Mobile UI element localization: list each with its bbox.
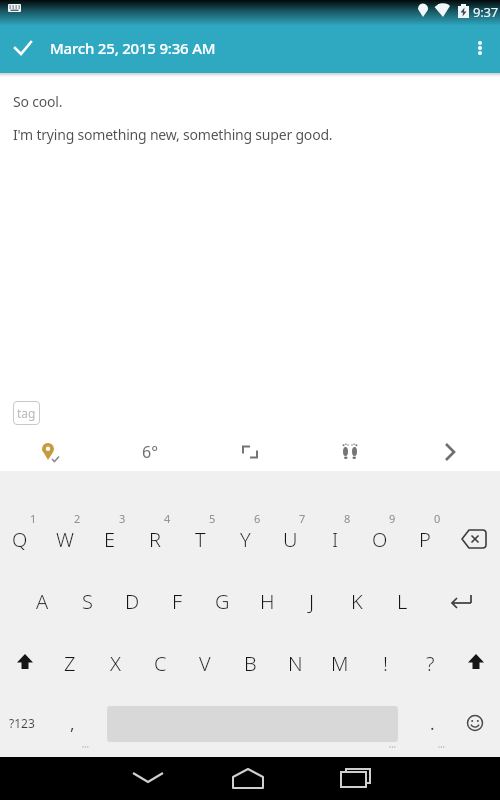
staticText: 8	[344, 511, 351, 526]
staticText: 6	[254, 511, 261, 526]
button[interactable]: Q	[0, 524, 42, 554]
staticText: tag	[17, 405, 36, 421]
button[interactable]	[4, 645, 46, 681]
staticText: .	[430, 712, 435, 735]
button[interactable]: G	[200, 586, 244, 616]
staticText: A	[36, 588, 49, 615]
button[interactable]: L	[380, 586, 424, 616]
staticText: W	[56, 526, 74, 553]
staticText: B	[244, 650, 257, 677]
button[interactable]: !	[363, 648, 407, 678]
button[interactable]: ?	[408, 648, 452, 678]
staticText: R	[149, 526, 161, 553]
staticText: I'm trying something new, something supe…	[13, 125, 333, 144]
button[interactable]	[230, 434, 270, 470]
button[interactable]	[430, 434, 470, 470]
staticText: 9:37	[473, 3, 498, 21]
staticText: March 25, 2015 9:36 AM	[50, 38, 216, 58]
button[interactable]: O	[358, 524, 402, 554]
button[interactable]: K	[335, 586, 379, 616]
staticText: V	[199, 650, 211, 677]
staticText: F	[172, 588, 183, 615]
staticText: E	[104, 526, 116, 553]
staticText: 9	[389, 511, 396, 526]
staticText: M	[331, 650, 349, 677]
staticText: K	[351, 588, 363, 615]
button[interactable]: N	[273, 648, 317, 678]
button[interactable]: C	[138, 648, 182, 678]
button[interactable]: X	[93, 648, 137, 678]
staticText: So cool.	[13, 92, 63, 111]
staticText: 2	[74, 511, 81, 526]
button[interactable]: 6°	[130, 434, 170, 470]
staticText: D	[125, 588, 140, 615]
button[interactable]: Z	[48, 648, 92, 678]
staticText: O	[372, 526, 388, 553]
button[interactable]	[466, 33, 494, 63]
button[interactable]: B	[228, 648, 272, 678]
button[interactable]	[440, 583, 484, 619]
button[interactable]: I	[313, 524, 357, 554]
staticText: H	[260, 588, 275, 615]
staticText: I	[332, 526, 339, 553]
staticText: 1	[30, 511, 37, 526]
button[interactable]	[452, 521, 496, 557]
staticText: !	[383, 650, 388, 677]
button[interactable]	[128, 759, 168, 799]
button[interactable]	[336, 759, 376, 799]
staticText: P	[419, 526, 431, 553]
button[interactable]	[30, 434, 70, 470]
button[interactable]: ?123	[0, 708, 44, 738]
button[interactable]: P	[403, 524, 447, 554]
staticText: 6°	[142, 441, 159, 463]
button[interactable]: J	[290, 586, 334, 616]
button[interactable]: S	[65, 586, 109, 616]
button[interactable]: W	[43, 524, 87, 554]
staticText: T	[195, 526, 206, 553]
button[interactable]	[228, 759, 268, 799]
staticText: N	[288, 650, 303, 677]
staticText: 4	[164, 511, 171, 526]
staticText: Q	[12, 526, 28, 553]
staticText: 5	[209, 511, 216, 526]
button[interactable]	[8, 33, 38, 63]
button[interactable]: R	[133, 524, 177, 554]
button[interactable]: H	[245, 586, 289, 616]
button[interactable]	[455, 645, 497, 681]
staticText: 0	[434, 511, 441, 526]
button[interactable]: D	[110, 586, 154, 616]
staticText: U	[283, 526, 298, 553]
button[interactable]: A	[20, 586, 64, 616]
staticText: X	[110, 650, 121, 677]
button[interactable]: .	[410, 708, 454, 738]
button[interactable]: F	[155, 586, 199, 616]
button[interactable]: ,	[50, 708, 94, 738]
staticText: Y	[240, 526, 251, 553]
staticText: ?	[426, 650, 435, 677]
staticText: 7	[299, 511, 306, 526]
button[interactable]	[330, 434, 370, 470]
staticText: G	[215, 588, 230, 615]
staticText: 3	[119, 511, 126, 526]
button[interactable]: Y	[223, 524, 267, 554]
button[interactable]: E	[88, 524, 132, 554]
staticText: C	[154, 650, 167, 677]
staticText: S	[82, 588, 93, 615]
staticText: L	[397, 588, 408, 615]
staticText: ,	[70, 712, 75, 735]
button[interactable]	[455, 705, 495, 741]
button[interactable]: U	[268, 524, 312, 554]
button[interactable]: tag	[13, 401, 40, 425]
staticText: J	[309, 588, 315, 615]
staticText: ?123	[9, 715, 35, 731]
staticText: Z	[64, 650, 76, 677]
button[interactable]: V	[183, 648, 227, 678]
button[interactable]: M	[318, 648, 362, 678]
button[interactable]: T	[178, 524, 222, 554]
